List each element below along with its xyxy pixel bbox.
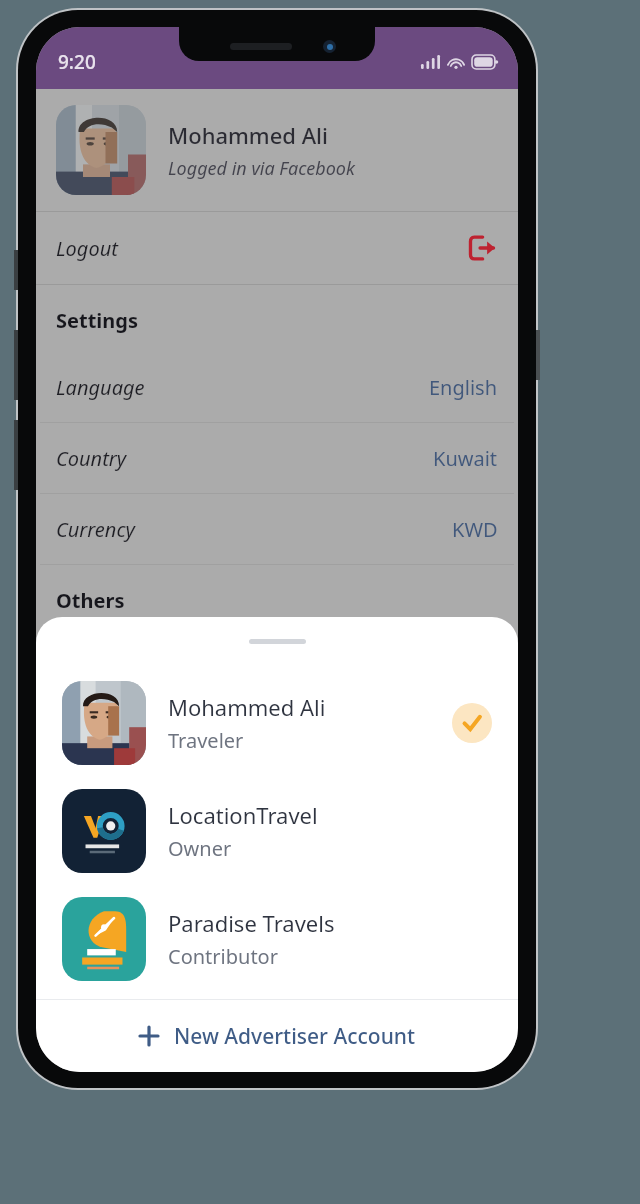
staticText: Language (56, 374, 145, 401)
button[interactable]: New Advertiser Account (36, 1000, 518, 1072)
staticText: Contributor (168, 943, 278, 970)
staticText: Mohammed Ali (168, 692, 326, 722)
staticText: Owner (168, 835, 232, 862)
staticText: Logout (56, 235, 118, 262)
staticText: Paradise Travels (168, 908, 335, 938)
staticText: New Advertiser Account (174, 1022, 416, 1051)
staticText: Currency (56, 516, 135, 543)
button[interactable]: Language (36, 352, 518, 422)
button[interactable]: LocationTravel (36, 786, 518, 876)
staticText: English (429, 374, 498, 401)
staticText: 9:20 (58, 49, 96, 75)
other: Logout (466, 232, 498, 264)
staticText: Logged in via Facebook (168, 156, 355, 181)
button[interactable]: Mohammed Ali (36, 89, 518, 211)
button[interactable]: Logout (36, 212, 518, 284)
staticText: Country (56, 445, 127, 472)
staticText: Others (56, 587, 125, 614)
staticText: Settings (56, 307, 138, 334)
staticText: Kuwait (433, 445, 498, 472)
staticText: Mohammed Ali (168, 120, 328, 150)
button[interactable]: Currency (36, 494, 518, 564)
button[interactable]: Mohammed Ali (36, 678, 518, 768)
staticText: Traveler (168, 727, 244, 754)
staticText: LocationTravel (168, 800, 318, 830)
staticText: KWD (452, 516, 498, 543)
button[interactable]: Country (36, 423, 518, 493)
button[interactable]: Paradise Travels (36, 894, 518, 984)
